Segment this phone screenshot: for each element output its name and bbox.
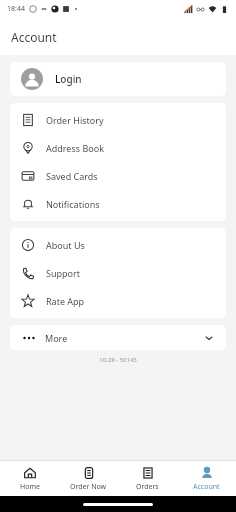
staticText: 10.28 - 50145 <box>0 356 236 364</box>
button[interactable]: Order Now <box>59 461 118 496</box>
button[interactable]: Orders <box>118 461 177 496</box>
staticText: Rate App <box>46 295 85 307</box>
staticText: Home <box>20 482 40 492</box>
staticText: Notifications <box>46 198 100 210</box>
button[interactable]: Address Book <box>10 134 226 162</box>
button[interactable]: Home <box>0 461 59 496</box>
staticText: Address Book <box>46 142 104 154</box>
staticText: Order History <box>46 114 104 126</box>
button[interactable]: Login <box>10 62 226 96</box>
staticText: Login <box>55 72 82 86</box>
staticText: 18:44 <box>7 4 25 14</box>
button[interactable]: Saved Cards <box>10 162 226 190</box>
button[interactable]: Notifications <box>10 190 226 218</box>
staticText: More <box>45 332 68 344</box>
button[interactable]: Order History <box>10 106 226 134</box>
staticText: Order Now <box>70 482 107 492</box>
button[interactable]: Support <box>10 259 226 287</box>
button[interactable]: Account <box>177 461 236 496</box>
staticText: Support <box>46 267 80 279</box>
button[interactable]: Rate App <box>10 287 226 315</box>
staticText: Account <box>11 29 57 45</box>
staticText: About Us <box>46 239 85 251</box>
button[interactable]: About Us <box>10 231 226 259</box>
staticText: Saved Cards <box>46 170 98 182</box>
button[interactable]: More <box>10 325 226 350</box>
staticText: Orders <box>136 482 159 492</box>
staticText: Account <box>193 482 220 492</box>
